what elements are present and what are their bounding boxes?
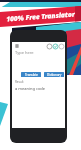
button[interactable]: Clear	[46, 43, 52, 49]
staticText: Type here	[15, 50, 34, 55]
button[interactable]: Dictionary	[44, 72, 64, 77]
button[interactable]: More	[58, 43, 64, 49]
staticText: a meaning code	[15, 86, 46, 91]
staticText: Translate	[25, 73, 38, 77]
staticText: 100% Free Translator	[6, 9, 75, 23]
staticText: Dictionary	[47, 73, 62, 77]
button[interactable]: Translate	[21, 72, 41, 77]
staticText: Result	[15, 80, 24, 84]
button[interactable]: Accept	[52, 43, 58, 49]
button[interactable]: Menu	[14, 43, 19, 48]
